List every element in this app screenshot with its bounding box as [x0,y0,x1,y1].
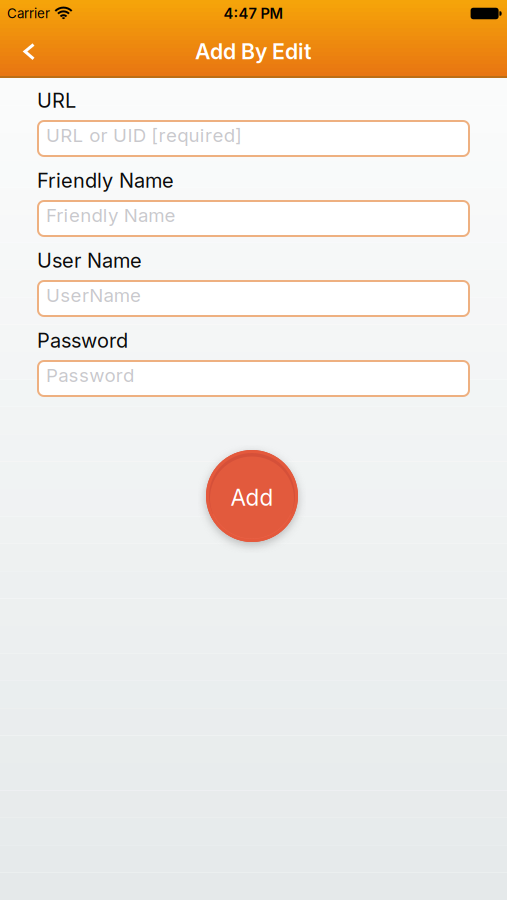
button[interactable]: Add [206,450,298,542]
staticText: Friendly Name [46,204,176,226]
button[interactable]: Friendly Name [37,200,470,237]
staticText: Password [46,364,134,386]
staticText: Carrier [7,6,50,21]
staticText: 4:47 PM [223,5,283,22]
button[interactable]: URL or UID [required] [37,120,470,157]
button[interactable]: Password [37,360,470,397]
staticText: User Name [37,249,142,272]
staticText: URL or UID [required] [46,124,242,146]
staticText: Password [37,329,128,352]
staticText: URL [37,89,76,112]
staticText: Add By Edit [195,39,312,64]
staticText: Friendly Name [37,169,174,192]
button[interactable]: UserName [37,280,470,317]
staticText: UserName [46,284,141,306]
button[interactable]: Back [0,29,50,74]
staticText: Add [230,484,273,511]
